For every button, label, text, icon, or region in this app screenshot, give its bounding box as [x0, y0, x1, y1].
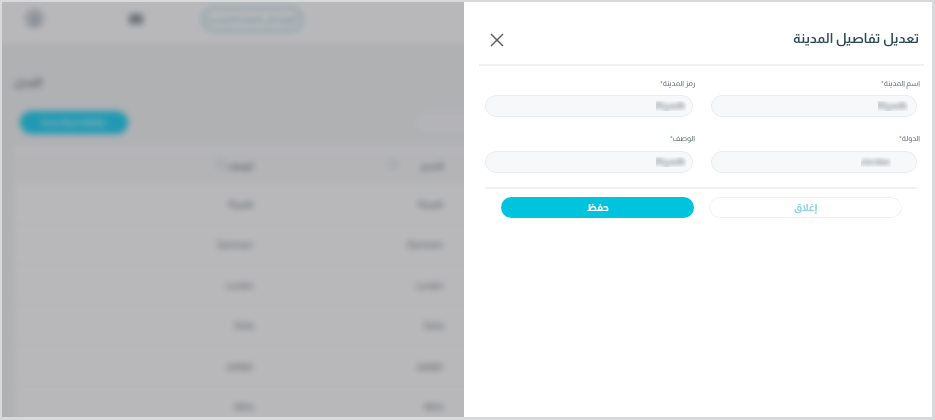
button[interactable]: إغلاق — [709, 197, 902, 218]
staticText: *رمز المدينة — [660, 79, 696, 87]
staticText: Doha — [424, 321, 444, 330]
staticText: *الدولة — [899, 134, 920, 142]
staticText: الاسم — [421, 161, 444, 170]
staticText: Abha — [424, 402, 444, 411]
staticText: *اسم المدينة — [881, 79, 920, 87]
staticText: Riyadh — [228, 200, 254, 209]
staticText: الوصف — [227, 161, 254, 170]
button[interactable]: حفظ — [501, 197, 694, 218]
button[interactable]: Jordan — [711, 151, 917, 173]
staticText: العودة إلى الصفحة الرئيسية — [208, 15, 297, 24]
staticText: إغلاق — [794, 202, 817, 213]
staticText: Riyadh — [418, 200, 444, 209]
staticText: Jeddah — [226, 362, 254, 371]
staticText: Jordan — [861, 157, 891, 167]
button[interactable]: العودة إلى الصفحة الرئيسية — [202, 7, 303, 32]
staticText: Dammam — [407, 240, 444, 249]
button[interactable]: Riyadh — [711, 95, 917, 117]
button[interactable]: Riyadh — [485, 95, 693, 117]
staticText: Riyadh — [656, 101, 686, 111]
staticText: حفظ — [587, 202, 609, 213]
button[interactable] — [414, 110, 470, 134]
staticText: إضافة مدينة جديدة + — [41, 118, 108, 127]
button[interactable]: Riyadh — [485, 151, 693, 173]
staticText: London — [226, 281, 254, 290]
button[interactable]: إضافة مدينة جديدة + — [20, 111, 128, 134]
staticText: *الوصف — [670, 134, 696, 142]
staticText: London — [416, 281, 444, 290]
staticText: Riyadh — [656, 157, 686, 167]
staticText: المدن — [14, 76, 42, 88]
button[interactable]: Profile — [25, 9, 44, 28]
staticText: Riyadh — [878, 101, 908, 111]
staticText: Doha — [234, 321, 254, 330]
button[interactable]: Close — [483, 26, 511, 54]
staticText: Jeddah — [416, 362, 444, 371]
staticText: Dammam — [217, 240, 254, 249]
staticText: تعديل تفاصيل المدينة — [793, 31, 920, 46]
staticText: Abha — [234, 402, 254, 411]
